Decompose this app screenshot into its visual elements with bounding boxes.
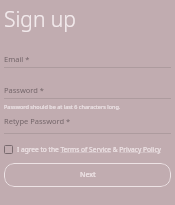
staticText: Email *: [4, 54, 30, 64]
staticText: Next: [80, 170, 96, 180]
button[interactable]: I agree to the Terms of Service & Privac…: [4, 143, 161, 155]
staticText: Retype Password *: [4, 116, 71, 126]
staticText: I agree to the Terms of Service & Privac…: [17, 145, 161, 154]
staticText: Password *: [4, 85, 45, 95]
button[interactable]: Next: [4, 163, 171, 187]
staticText: Password should be at last 6 characters …: [4, 103, 121, 110]
staticText: Sign up: [4, 5, 76, 34]
